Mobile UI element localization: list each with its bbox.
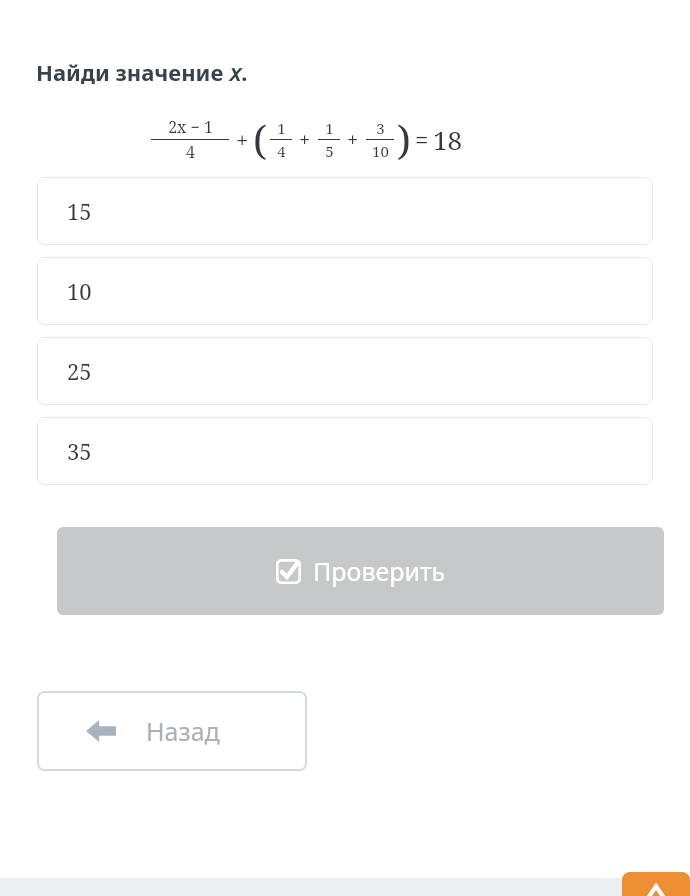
staticText: 35: [67, 436, 92, 466]
button[interactable]: Проверить: [57, 527, 664, 615]
button[interactable]: 25: [37, 337, 653, 405]
staticText: +: [236, 124, 249, 154]
button[interactable]: Назад: [37, 691, 307, 771]
staticText: 4: [186, 141, 195, 163]
staticText: 1: [325, 118, 334, 138]
button[interactable]: 35: [37, 417, 653, 485]
staticText: =: [415, 123, 429, 156]
staticText: 15: [67, 196, 92, 226]
button[interactable]: Наверх: [622, 872, 690, 896]
staticText: +: [299, 126, 311, 153]
staticText: 2x − 1: [168, 116, 213, 138]
staticText: 1: [277, 118, 286, 138]
button[interactable]: 10: [37, 257, 653, 325]
staticText: 10: [67, 276, 92, 306]
staticText: 25: [67, 356, 92, 386]
staticText: 18: [433, 122, 463, 157]
staticText: ): [397, 112, 411, 166]
staticText: Проверить: [313, 554, 446, 588]
other: Назад: [86, 719, 116, 743]
staticText: 10: [372, 141, 389, 161]
staticText: +: [347, 126, 359, 153]
staticText: Назад: [146, 714, 220, 748]
button[interactable]: 15: [37, 177, 653, 245]
staticText: 3: [376, 118, 385, 138]
staticText: (: [253, 112, 267, 166]
staticText: Найди значение 𝑥.: [36, 57, 248, 87]
staticText: 5: [325, 141, 334, 161]
staticText: 4: [277, 141, 286, 161]
